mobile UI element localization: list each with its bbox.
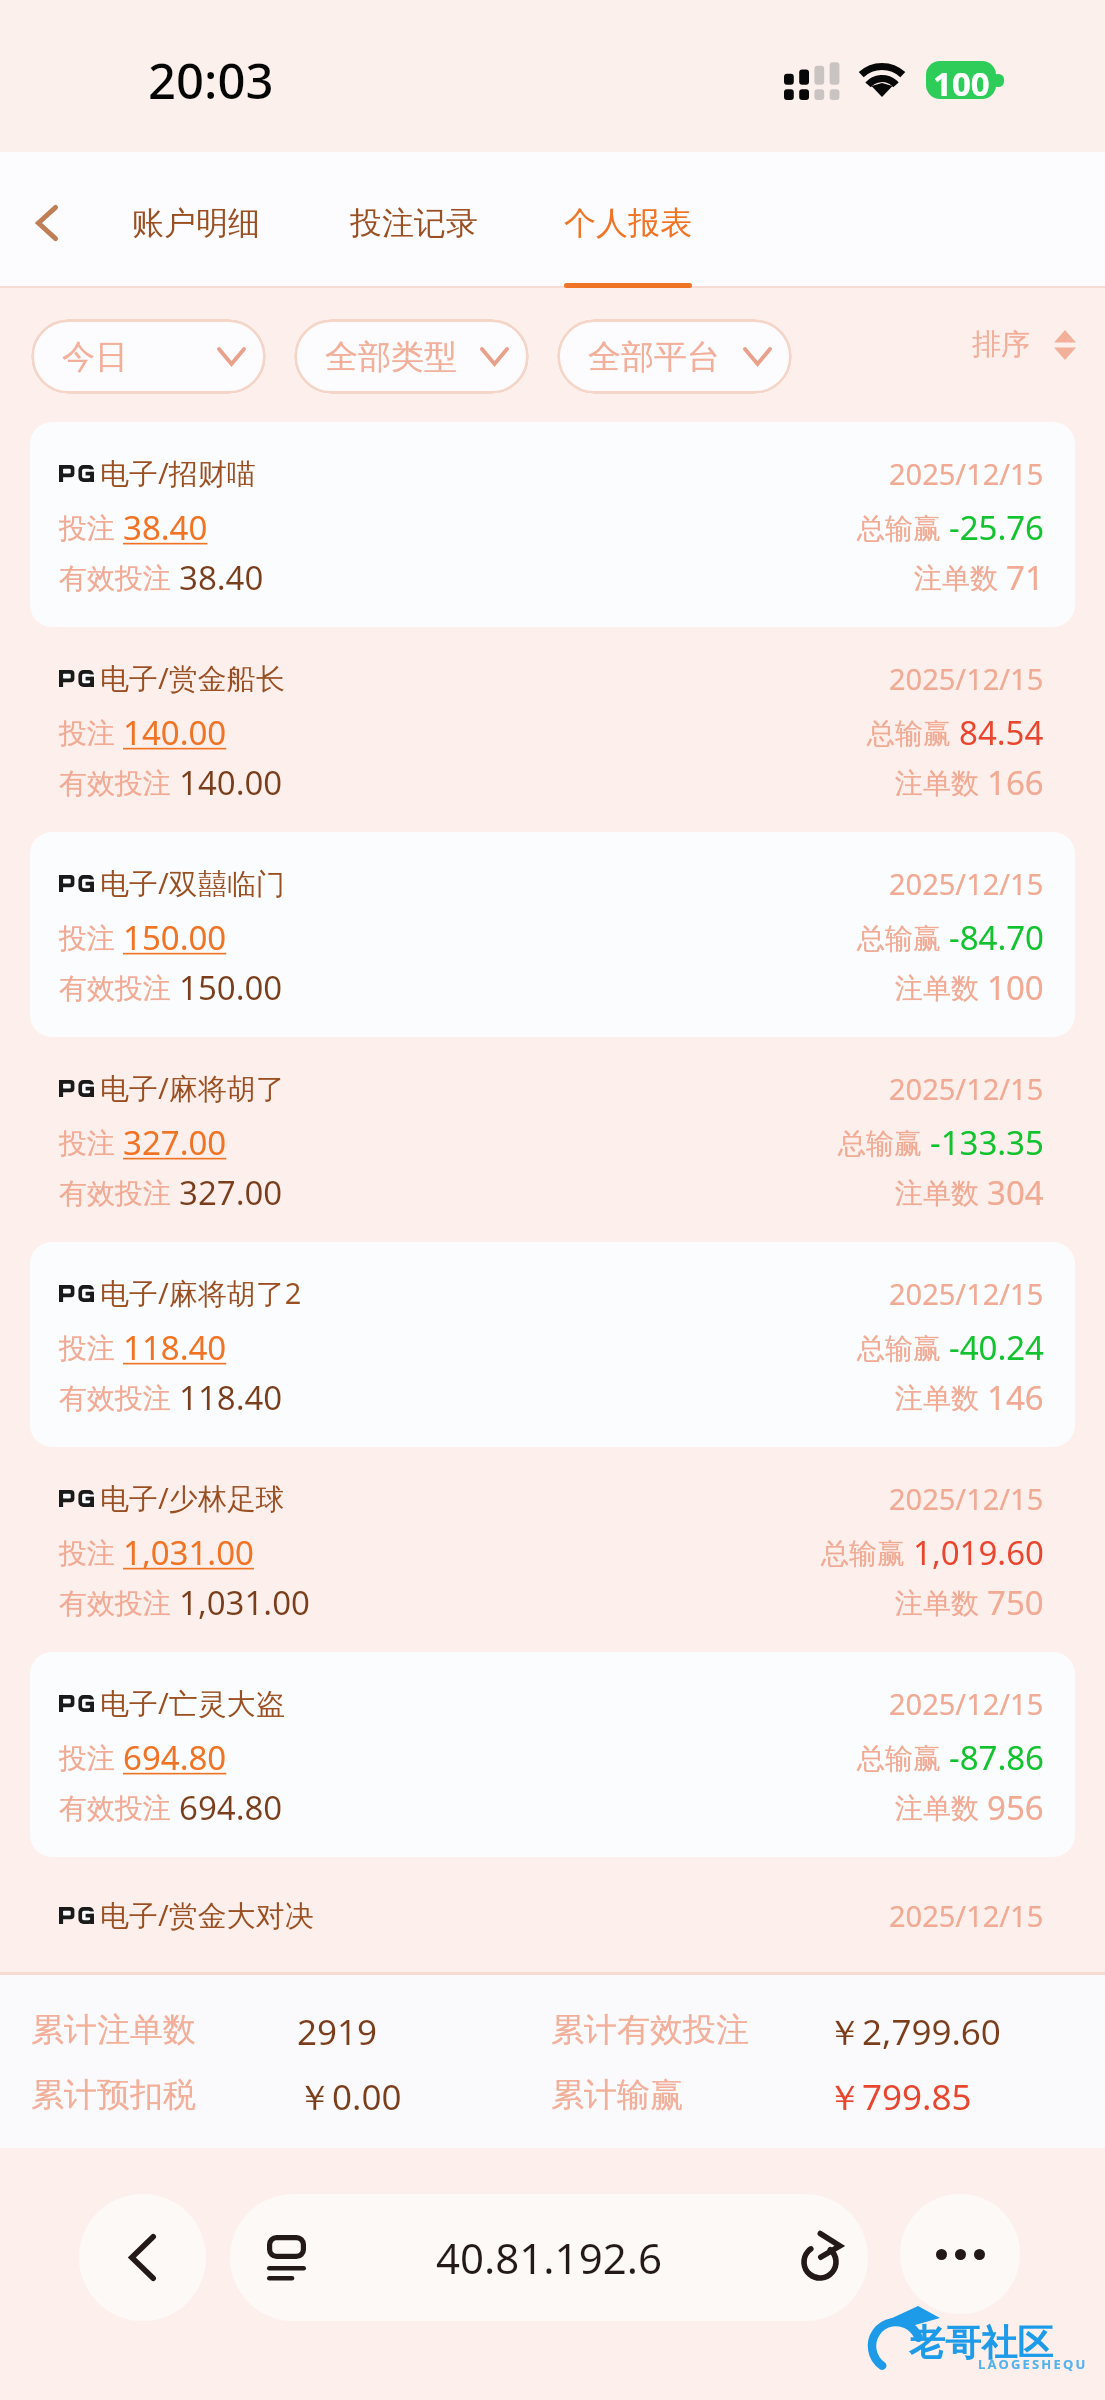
button[interactable]: Reload: [797, 2233, 847, 2283]
staticText: 2919: [297, 2008, 378, 2051]
staticText: 2025/12/15: [889, 864, 1044, 903]
button[interactable]: 排序: [972, 326, 1076, 363]
staticText: 投注: [59, 713, 123, 751]
staticText: 38.40: [179, 555, 264, 600]
staticText: 注单数: [895, 1583, 987, 1621]
button[interactable]: 全部类型: [294, 319, 529, 394]
button[interactable]: 电子/少林足球: [30, 1447, 1075, 1652]
staticText: 140.00: [179, 760, 283, 805]
button[interactable]: Reader view: [264, 2233, 308, 2283]
staticText: 总输赢: [857, 1738, 949, 1776]
staticText: -87.86: [949, 1735, 1044, 1780]
staticText: 20:03: [148, 47, 274, 114]
staticText: 118.40: [179, 1375, 283, 1420]
button[interactable]: 电子/麻将胡了2: [30, 1242, 1075, 1447]
staticText: LAOGESHEQU: [978, 2355, 1088, 2372]
staticText: 电子/少林足球: [100, 1478, 285, 1518]
button[interactable]: 投注记录: [350, 203, 478, 243]
staticText: 全部类型: [325, 336, 457, 378]
staticText: 电子/亡灵大盗: [100, 1683, 285, 1723]
button[interactable]: 电子/赏金船长: [30, 627, 1075, 832]
staticText: 排序: [972, 326, 1030, 363]
button[interactable]: 电子/麻将胡了: [30, 1037, 1075, 1242]
staticText: 2025/12/15: [889, 1684, 1044, 1723]
staticText: 投注记录: [350, 203, 478, 243]
staticText: -133.35: [930, 1120, 1044, 1165]
staticText: 150.00: [179, 965, 283, 1010]
staticText: 166: [987, 760, 1044, 805]
staticText: 投注: [59, 1533, 123, 1571]
staticText: 694.80: [179, 1785, 283, 1830]
button[interactable]: Reader view: [230, 2194, 868, 2321]
button[interactable]: 电子/亡灵大盗: [30, 1652, 1075, 1857]
staticText: 电子/双囍临门: [100, 863, 285, 903]
staticText: 有效投注: [59, 1378, 179, 1416]
staticText: 有效投注: [59, 763, 179, 801]
staticText: 84.54: [959, 710, 1044, 755]
button[interactable]: 电子/双囍临门: [30, 832, 1075, 1037]
button[interactable]: 全部平台: [557, 319, 792, 394]
staticText: 304: [987, 1170, 1044, 1215]
button[interactable]: More options: [900, 2194, 1020, 2314]
staticText: 2025/12/15: [889, 1896, 1044, 1935]
staticText: 总输赢: [857, 918, 949, 956]
staticText: 累计注单数: [31, 2009, 196, 2051]
staticText: 有效投注: [59, 1583, 179, 1621]
staticText: 投注: [59, 1328, 123, 1366]
button[interactable]: 电子/赏金大对决: [30, 1857, 1075, 1972]
staticText: 2025/12/15: [889, 1069, 1044, 1108]
staticText: 100: [933, 61, 990, 99]
staticText: -84.70: [949, 915, 1044, 960]
staticText: 2025/12/15: [889, 1274, 1044, 1313]
button[interactable]: 账户明细: [132, 203, 260, 243]
staticText: 有效投注: [59, 1173, 179, 1211]
staticText: 电子/麻将胡了: [100, 1068, 285, 1108]
button[interactable]: Back: [10, 186, 84, 260]
staticText: 电子/麻将胡了2: [100, 1273, 302, 1313]
staticText: ￥2,799.60: [827, 2008, 1001, 2051]
staticText: 327.00: [123, 1120, 227, 1165]
staticText: 电子/招财喵: [100, 453, 256, 493]
staticText: 总输赢: [821, 1533, 913, 1571]
staticText: 956: [987, 1785, 1044, 1830]
staticText: 750: [987, 1580, 1044, 1625]
button[interactable]: 电子/招财喵: [30, 422, 1075, 627]
staticText: 电子/赏金船长: [100, 658, 285, 698]
staticText: 老哥社区: [909, 2320, 1053, 2365]
staticText: 146: [987, 1375, 1044, 1420]
staticText: 2025/12/15: [889, 1479, 1044, 1518]
staticText: 累计有效投注: [551, 2009, 749, 2051]
button[interactable]: 今日: [31, 319, 266, 394]
staticText: 有效投注: [59, 1788, 179, 1826]
button[interactable]: 个人报表: [564, 203, 692, 288]
staticText: 注单数: [895, 1378, 987, 1416]
staticText: 总输赢: [857, 1328, 949, 1366]
staticText: 注单数: [895, 968, 987, 1006]
staticText: ￥799.85: [827, 2073, 972, 2116]
staticText: -40.24: [949, 1325, 1044, 1370]
staticText: 投注: [59, 1738, 123, 1776]
staticText: 2025/12/15: [889, 454, 1044, 493]
staticText: 注单数: [895, 1173, 987, 1211]
staticText: 140.00: [123, 710, 227, 755]
staticText: 1,019.60: [913, 1530, 1044, 1575]
staticText: 投注: [59, 1123, 123, 1161]
staticText: 总输赢: [867, 713, 959, 751]
staticText: 38.40: [123, 505, 208, 550]
staticText: 个人报表: [564, 203, 692, 243]
staticText: 电子/赏金大对决: [100, 1895, 314, 1935]
staticText: 150.00: [123, 915, 227, 960]
staticText: 注单数: [895, 1788, 987, 1826]
staticText: 注单数: [914, 558, 1006, 596]
staticText: 总输赢: [857, 508, 949, 546]
staticText: 71: [1006, 555, 1044, 600]
staticText: 总输赢: [838, 1123, 930, 1161]
button[interactable]: Back: [79, 2194, 206, 2321]
staticText: 全部平台: [588, 336, 720, 378]
staticText: 100: [987, 965, 1044, 1010]
staticText: 今日: [62, 336, 128, 378]
staticText: ￥0.00: [297, 2073, 402, 2116]
staticText: 投注: [59, 508, 123, 546]
staticText: 账户明细: [132, 203, 260, 243]
staticText: 注单数: [895, 763, 987, 801]
